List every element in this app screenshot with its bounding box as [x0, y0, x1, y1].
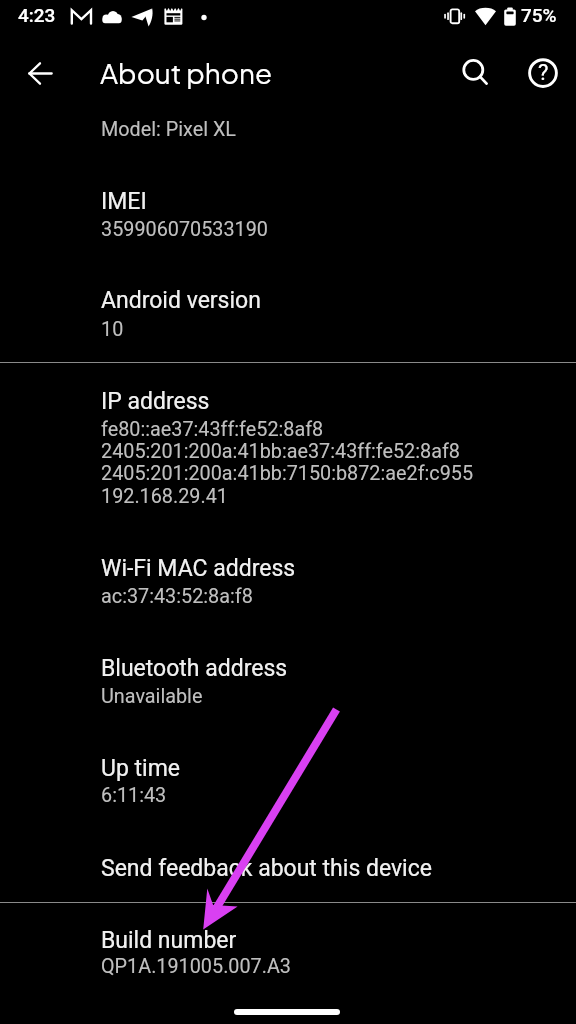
button[interactable]: [0, 638, 576, 710]
staticText: 6:11:43: [101, 784, 167, 807]
button[interactable]: Search: [454, 50, 502, 98]
button[interactable]: Navigate up: [17, 51, 65, 99]
button[interactable]: [0, 372, 576, 510]
button[interactable]: [0, 172, 576, 244]
button[interactable]: [0, 838, 576, 896]
staticText: IP address: [101, 388, 210, 415]
staticText: QP1A.191005.007.A3: [101, 955, 291, 978]
button[interactable]: [0, 738, 576, 810]
staticText: 2405:201:200a:41bb:ae37:43ff:fe52:8af8: [101, 440, 460, 463]
staticText: ?: [538, 60, 549, 86]
button[interactable]: [0, 538, 576, 610]
staticText: Send feedback about this device: [101, 855, 432, 882]
staticText: Android version: [101, 287, 261, 314]
staticText: Bluetooth address: [101, 655, 288, 682]
staticText: Model: Pixel XL: [101, 118, 236, 141]
staticText: About phone: [100, 55, 273, 90]
staticText: IMEI: [101, 188, 147, 215]
staticText: 4:23: [18, 4, 56, 26]
button[interactable]: [0, 100, 576, 162]
button[interactable]: [0, 270, 576, 342]
staticText: Build number: [101, 927, 237, 954]
staticText: 10: [101, 318, 124, 341]
staticText: Up time: [101, 755, 181, 782]
staticText: 192.168.29.41: [101, 485, 228, 508]
staticText: 2405:201:200a:41bb:7150:b872:ae2f:c955: [101, 462, 474, 485]
staticText: Wi-Fi MAC address: [101, 555, 296, 582]
staticText: ac:37:43:52:8a:f8: [101, 585, 253, 608]
staticText: Unavailable: [101, 685, 203, 708]
button[interactable]: [0, 910, 576, 982]
button[interactable]: Help: [519, 49, 567, 97]
staticText: 359906070533190: [101, 218, 268, 241]
staticText: 75%: [521, 4, 557, 26]
staticText: fe80::ae37:43ff:fe52:8af8: [101, 418, 324, 441]
